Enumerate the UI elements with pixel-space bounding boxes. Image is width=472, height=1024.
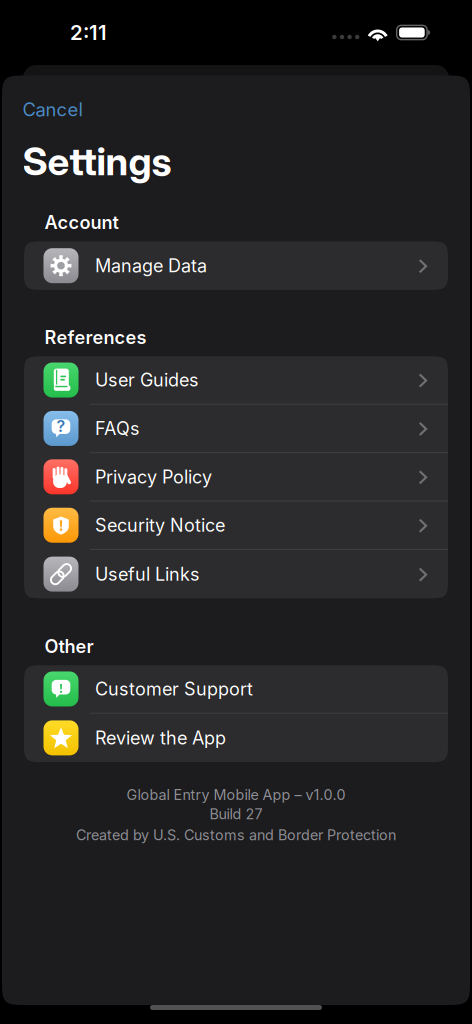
button[interactable]: Useful Links	[24, 550, 448, 598]
button[interactable]: User Guides	[24, 356, 448, 405]
staticText: FAQs	[95, 417, 140, 439]
button[interactable]: ?	[24, 405, 448, 453]
staticText: User Guides	[95, 369, 199, 391]
staticText: References	[44, 326, 146, 348]
staticText: Review the App	[95, 727, 226, 749]
staticText: Manage Data	[95, 255, 207, 277]
staticText: Settings	[22, 138, 171, 185]
staticText: Cancel	[22, 98, 82, 121]
staticText: Security Notice	[95, 514, 225, 536]
button[interactable]: Cancel	[22, 94, 82, 125]
staticText: ?	[56, 416, 65, 436]
staticText: Useful Links	[95, 563, 200, 585]
staticText: Privacy Policy	[95, 466, 212, 488]
staticText: 2:11	[70, 20, 107, 45]
button[interactable]: Review the App	[24, 714, 448, 762]
staticText: Created by U.S. Customs and Border Prote…	[76, 826, 396, 844]
staticText: Other	[44, 635, 93, 657]
button[interactable]: Privacy Policy	[24, 453, 448, 501]
staticText: Build 27	[209, 805, 262, 823]
staticText: Customer Support	[95, 678, 253, 700]
button[interactable]: Manage Data	[24, 241, 448, 290]
button[interactable]: Customer Support	[24, 665, 448, 714]
button[interactable]: Security Notice	[24, 501, 448, 550]
staticText: Global Entry Mobile App – v1.0.0	[126, 786, 345, 803]
staticText: Account	[44, 211, 118, 233]
